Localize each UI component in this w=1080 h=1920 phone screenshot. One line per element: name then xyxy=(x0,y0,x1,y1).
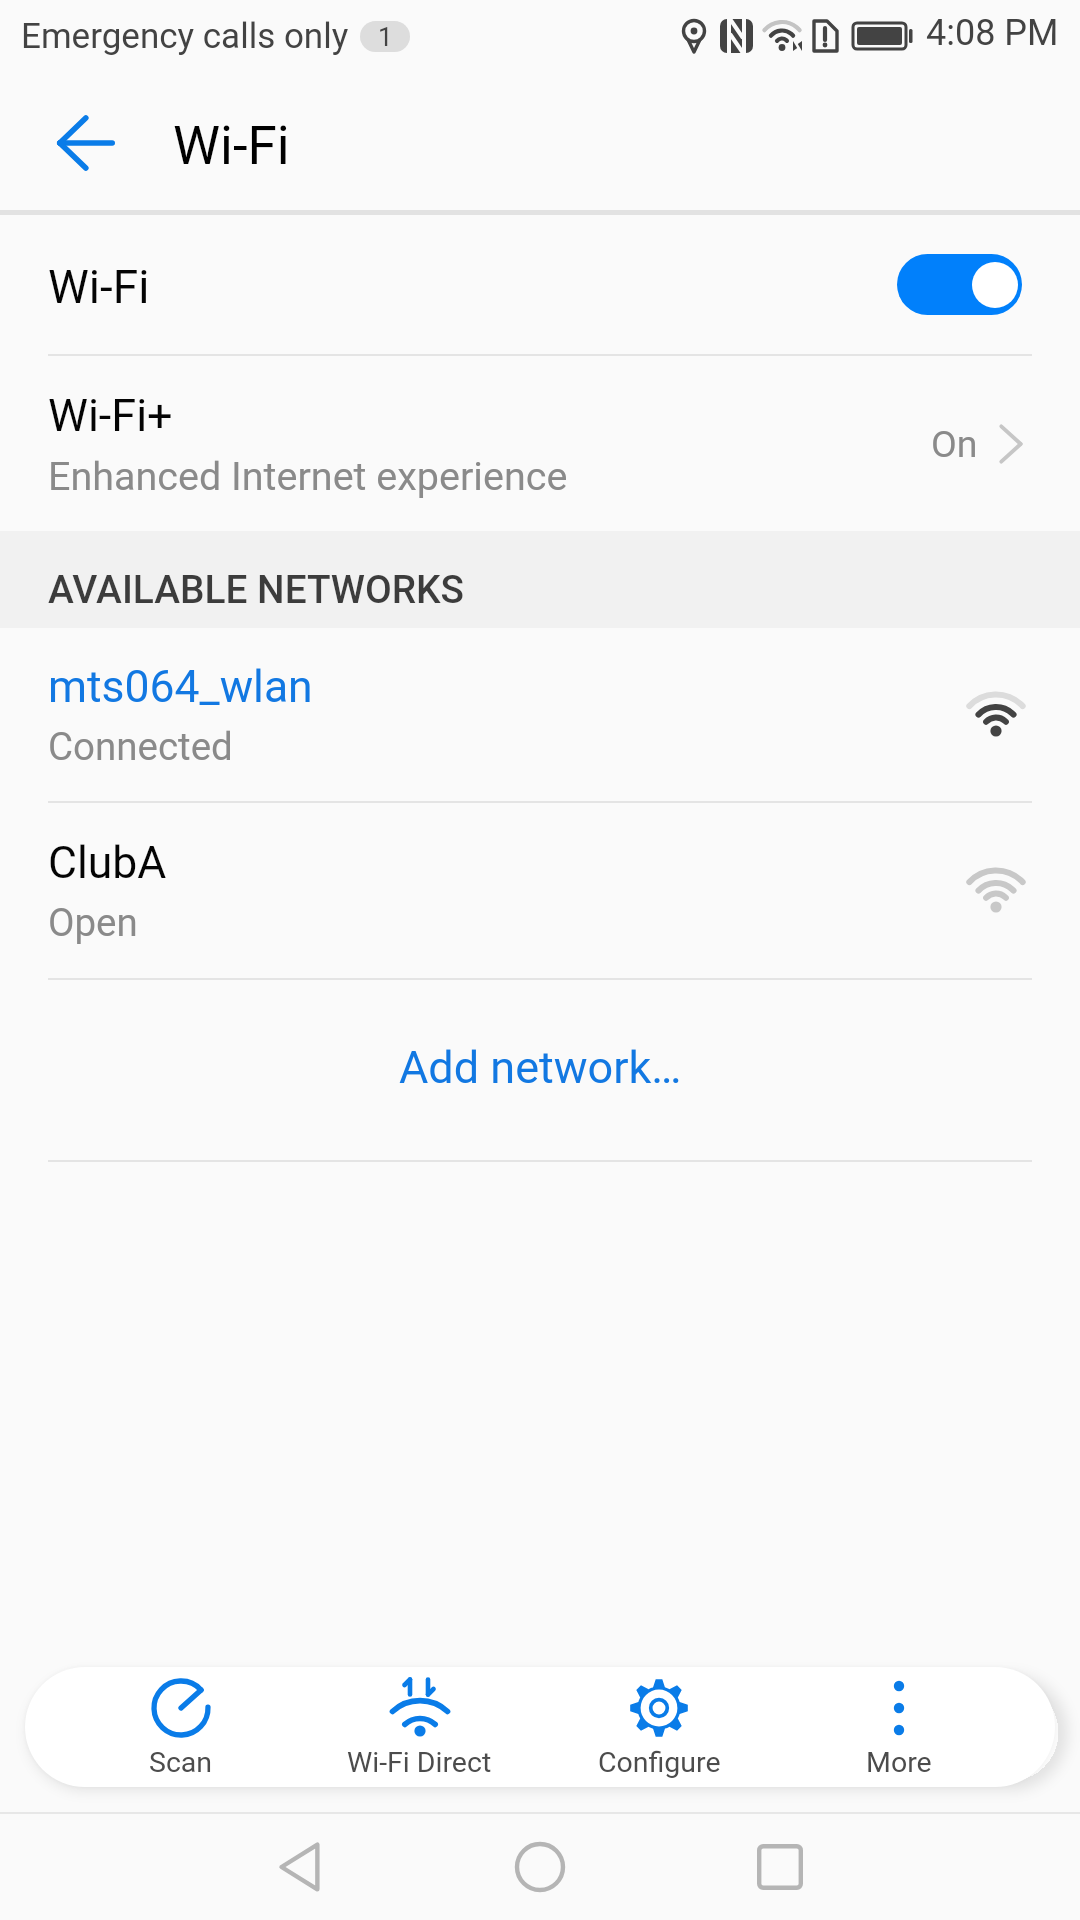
staticText: Open xyxy=(48,900,138,945)
staticText: On xyxy=(931,422,978,466)
button[interactable]: Recents xyxy=(720,1814,840,1920)
staticText: Wi-Fi Direct xyxy=(347,1746,492,1779)
button[interactable]: ClubA xyxy=(0,803,1080,978)
staticText: Enhanced Internet experience xyxy=(48,453,568,499)
staticText: 4:08 PM xyxy=(926,12,1059,54)
button[interactable]: Back xyxy=(0,72,138,210)
staticText: AVAILABLE NETWORKS xyxy=(48,567,464,612)
button[interactable]: Back xyxy=(239,1814,359,1920)
button[interactable]: Wi-Fi Direct xyxy=(300,1667,539,1787)
staticText: ClubA xyxy=(48,837,167,889)
staticText: Scan xyxy=(149,1746,213,1779)
staticText: Add network… xyxy=(399,1041,682,1094)
staticText: mts064_wlan xyxy=(48,661,313,713)
button[interactable]: More xyxy=(779,1667,1019,1787)
button[interactable]: Wi-Fi xyxy=(0,215,1080,354)
staticText: More xyxy=(866,1746,932,1779)
staticText: Connected xyxy=(48,724,233,769)
button[interactable]: Configure xyxy=(539,1667,779,1787)
button[interactable]: Scan xyxy=(61,1667,300,1787)
staticText: 1 xyxy=(378,22,393,52)
staticText: Wi-Fi+ xyxy=(48,389,173,442)
staticText: Configure xyxy=(598,1746,721,1779)
button[interactable]: Add network… xyxy=(0,980,1080,1160)
staticText: Wi-Fi xyxy=(48,260,150,314)
staticText: Emergency calls only xyxy=(21,16,349,57)
button[interactable]: Home xyxy=(480,1814,600,1920)
button[interactable]: Wi-Fi+ xyxy=(0,356,1080,531)
button[interactable]: mts064_wlan xyxy=(0,628,1080,801)
staticText: Wi-Fi xyxy=(173,115,290,177)
